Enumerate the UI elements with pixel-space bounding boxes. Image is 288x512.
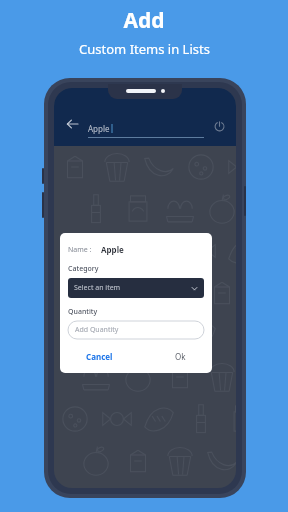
staticText: Name :	[68, 245, 92, 255]
staticText: Add Quantity	[75, 325, 119, 335]
staticText: Apple	[88, 123, 110, 134]
button[interactable]: Back	[62, 114, 82, 134]
staticText: Apple	[101, 244, 124, 255]
button[interactable]: Cancel	[82, 349, 117, 364]
button[interactable]: Add Quantity	[68, 321, 204, 339]
staticText: Category	[68, 264, 99, 274]
button[interactable]: Ok	[171, 349, 190, 364]
button[interactable]: Select an item	[68, 278, 204, 298]
staticText: Select an item	[74, 283, 121, 293]
button[interactable]: Power	[210, 117, 228, 135]
staticText: Ok	[175, 351, 186, 362]
staticText: Custom Items in Lists	[79, 40, 210, 58]
staticText: No Data Found	[112, 309, 179, 321]
staticText: Add	[123, 6, 165, 35]
button[interactable]: Apple	[88, 123, 204, 138]
staticText: Cancel	[86, 351, 113, 362]
staticText: Quantity	[68, 307, 98, 317]
